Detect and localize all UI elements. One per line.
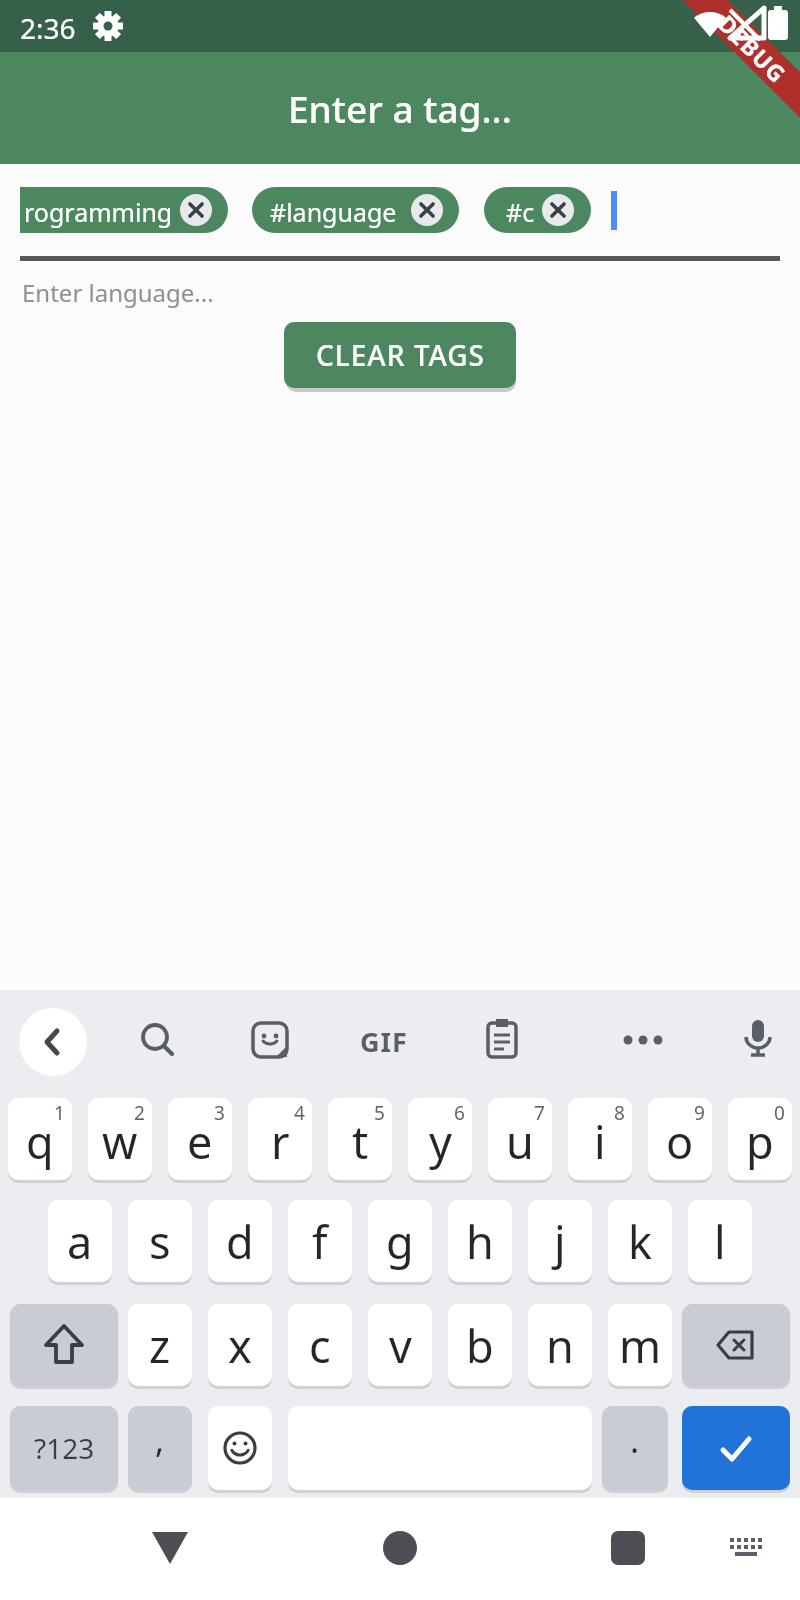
staticText: s	[149, 1211, 171, 1272]
button[interactable]: o	[648, 1098, 712, 1180]
staticText: 7	[534, 1100, 545, 1126]
button[interactable]: ?123	[10, 1406, 118, 1490]
staticText: b	[466, 1315, 494, 1376]
button[interactable]: d	[208, 1200, 272, 1282]
button[interactable]: e	[168, 1098, 232, 1180]
staticText: GIF	[360, 1023, 408, 1060]
staticText: j	[554, 1211, 566, 1272]
button[interactable]	[180, 194, 212, 226]
staticText: 4	[294, 1100, 305, 1126]
button[interactable]: w	[88, 1098, 152, 1180]
staticText: a	[67, 1211, 93, 1272]
staticText: d	[226, 1211, 254, 1272]
staticText: p	[746, 1111, 774, 1172]
staticText: c	[309, 1315, 331, 1376]
staticText: h	[466, 1211, 494, 1272]
staticText: 9	[694, 1100, 705, 1126]
button[interactable]: q	[8, 1098, 72, 1180]
staticText: g	[386, 1211, 414, 1272]
button[interactable]: .	[602, 1406, 668, 1490]
staticText: i	[594, 1111, 606, 1172]
button[interactable]	[208, 1406, 272, 1490]
staticText: v	[389, 1315, 412, 1376]
button[interactable]	[10, 1304, 118, 1386]
staticText: DEBUG	[712, 8, 794, 90]
staticText: r	[271, 1111, 290, 1172]
button[interactable]	[250, 1020, 290, 1060]
button[interactable]	[482, 1018, 522, 1058]
button[interactable]: f	[288, 1200, 352, 1282]
staticText: e	[187, 1111, 213, 1172]
staticText: 8	[614, 1100, 625, 1126]
staticText: ?123	[34, 1429, 95, 1467]
staticText: #language	[270, 195, 397, 229]
button[interactable]: rogramming	[20, 187, 228, 233]
staticText: 1	[54, 1100, 65, 1126]
button[interactable]: v	[368, 1304, 432, 1386]
staticText: f	[312, 1211, 328, 1272]
staticText: z	[149, 1315, 171, 1376]
staticText: 2:36	[20, 9, 76, 47]
button[interactable]	[411, 194, 443, 226]
button[interactable]	[610, 1530, 646, 1566]
button[interactable]: h	[448, 1200, 512, 1282]
button[interactable]	[726, 1534, 766, 1564]
staticText: u	[506, 1111, 534, 1172]
button[interactable]: n	[528, 1304, 592, 1386]
staticText: ,	[155, 1417, 165, 1463]
button[interactable]: i	[568, 1098, 632, 1180]
button[interactable]	[19, 1008, 87, 1076]
button[interactable]: j	[528, 1200, 592, 1282]
button[interactable]: b	[448, 1304, 512, 1386]
staticText: o	[666, 1111, 694, 1172]
staticText: 3	[214, 1100, 225, 1126]
button[interactable]	[682, 1406, 790, 1490]
staticText: .	[630, 1417, 640, 1463]
staticText: q	[26, 1111, 54, 1172]
button[interactable]: #language	[252, 187, 459, 233]
button[interactable]	[613, 1030, 673, 1050]
staticText: 6	[454, 1100, 465, 1126]
staticText: w	[102, 1111, 138, 1172]
staticText: 0	[774, 1100, 785, 1126]
button[interactable]: x	[208, 1304, 272, 1386]
staticText: x	[228, 1315, 252, 1376]
button[interactable]: k	[608, 1200, 672, 1282]
button[interactable]: a	[48, 1200, 112, 1282]
staticText: rogramming	[24, 195, 173, 229]
staticText: y	[429, 1111, 452, 1172]
button[interactable]: l	[688, 1200, 752, 1282]
button[interactable]: c	[288, 1304, 352, 1386]
staticText: m	[619, 1315, 662, 1376]
button[interactable]: u	[488, 1098, 552, 1180]
button[interactable]: t	[328, 1098, 392, 1180]
button[interactable]	[138, 1020, 178, 1060]
staticText: CLEAR TAGS	[316, 336, 485, 374]
button[interactable]	[542, 194, 574, 226]
button[interactable]	[150, 1528, 190, 1568]
button[interactable]: y	[408, 1098, 472, 1180]
button[interactable]	[382, 1530, 418, 1566]
staticText: 5	[374, 1100, 385, 1126]
button[interactable]: m	[608, 1304, 672, 1386]
staticText: k	[628, 1211, 653, 1272]
button[interactable]	[738, 1018, 778, 1058]
button[interactable]: r	[248, 1098, 312, 1180]
staticText: t	[352, 1111, 369, 1172]
button[interactable]: ,	[128, 1406, 192, 1490]
staticText: 2	[134, 1100, 145, 1126]
staticText: l	[714, 1211, 726, 1272]
staticText: Enter language...	[22, 276, 214, 309]
button[interactable]: p	[728, 1098, 792, 1180]
button[interactable]: CLEAR TAGS	[284, 322, 516, 388]
staticText: n	[546, 1315, 574, 1376]
button[interactable]: g	[368, 1200, 432, 1282]
button[interactable]	[682, 1304, 790, 1386]
staticText: Enter a tag...	[288, 83, 512, 133]
staticText: #c	[506, 195, 535, 229]
button[interactable]: s	[128, 1200, 192, 1282]
button[interactable]: #c	[484, 187, 591, 233]
button[interactable]: z	[128, 1304, 192, 1386]
